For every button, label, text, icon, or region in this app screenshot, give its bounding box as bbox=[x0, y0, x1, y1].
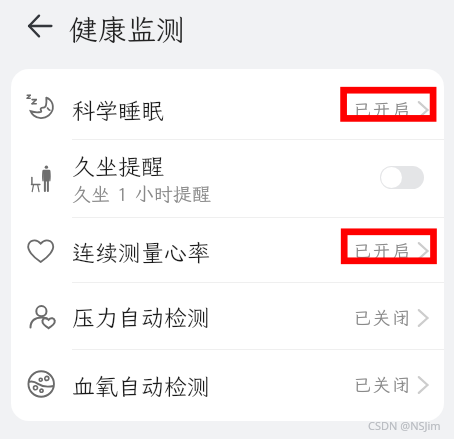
staticText: 已关闭 bbox=[353, 373, 413, 396]
button[interactable]: 科学睡眠 bbox=[11, 69, 444, 139]
staticText: CSDN @NSJim bbox=[368, 418, 441, 433]
staticText: 已开启 bbox=[353, 239, 413, 262]
staticText: 久坐提醒 bbox=[72, 151, 164, 181]
staticText: 已关闭 bbox=[353, 306, 413, 329]
button[interactable]: 久坐提醒 bbox=[11, 140, 444, 217]
button[interactable]: 连续测量心率 bbox=[11, 218, 444, 282]
staticText: 久坐 1 小时提醒 bbox=[72, 181, 211, 206]
staticText: 已开启 bbox=[353, 98, 413, 121]
button[interactable]: 压力自动检测 bbox=[11, 283, 444, 349]
button[interactable]: Back bbox=[16, 2, 64, 50]
staticText: 压力自动检测 bbox=[72, 302, 210, 332]
button[interactable]: 久坐提醒开关 bbox=[380, 166, 424, 189]
staticText: 血氧自动检测 bbox=[72, 371, 210, 401]
staticText: 连续测量心率 bbox=[72, 237, 210, 267]
staticText: 科学睡眠 bbox=[72, 95, 164, 125]
button[interactable]: 血氧自动检测 bbox=[11, 350, 444, 421]
staticText: 健康监测 bbox=[69, 10, 186, 48]
